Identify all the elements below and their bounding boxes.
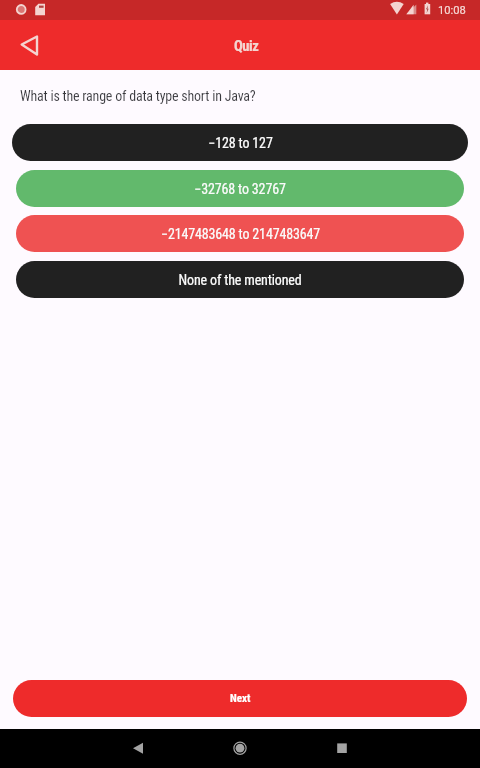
staticText: Next (230, 692, 251, 705)
staticText: −2147483648 to 2147483647 (161, 226, 320, 242)
button[interactable]: −128 to 127 (12, 124, 468, 161)
staticText: What is the range of data type short in … (20, 88, 256, 104)
button[interactable]: Recent apps (318, 729, 366, 768)
staticText: −32768 to 32767 (194, 181, 286, 197)
staticText: None of the mentioned (178, 272, 302, 288)
staticText: 10:08 (438, 4, 466, 17)
button[interactable]: Back (10, 25, 50, 65)
button[interactable]: None of the mentioned (16, 261, 464, 298)
button[interactable]: Back (114, 729, 162, 768)
button[interactable]: Home (216, 729, 264, 768)
button[interactable]: −2147483648 to 2147483647 (16, 215, 464, 252)
button[interactable]: Next (13, 680, 467, 717)
staticText: −128 to 127 (208, 135, 273, 151)
button[interactable]: −32768 to 32767 (16, 170, 464, 207)
staticText: Quiz (234, 37, 259, 54)
